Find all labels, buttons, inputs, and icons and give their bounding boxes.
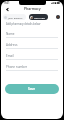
button[interactable]: Profile — [56, 15, 60, 19]
staticText: Email — [6, 54, 14, 58]
staticText: Add pharmacy details below — [6, 22, 58, 26]
staticText: Name — [6, 32, 15, 36]
button[interactable]: Save — [5, 84, 59, 94]
staticText: Phone number — [6, 65, 28, 69]
staticText: John Roberts — [8, 16, 23, 19]
button[interactable]: Cart Note — [29, 14, 48, 20]
staticText: Save — [28, 87, 36, 91]
button[interactable]: Back — [4, 6, 10, 12]
button[interactable]: John Roberts — [3, 14, 26, 20]
staticText: Address — [6, 43, 18, 47]
staticText: Cart Note — [34, 16, 45, 19]
staticText: 9:41 — [4, 1, 10, 5]
staticText: Pharmacy — [24, 6, 41, 11]
